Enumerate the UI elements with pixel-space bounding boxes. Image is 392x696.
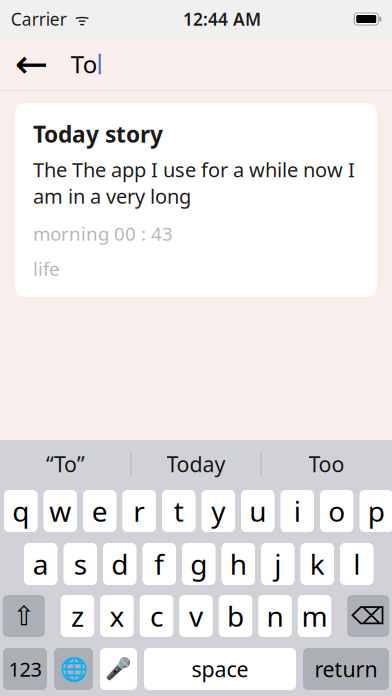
button[interactable]: Too xyxy=(261,440,391,488)
staticText: space xyxy=(191,655,248,683)
button[interactable]: g xyxy=(182,543,215,585)
staticText: b xyxy=(227,597,244,635)
staticText: m xyxy=(301,597,327,635)
staticText: n xyxy=(266,597,283,635)
button[interactable]: e xyxy=(83,490,116,532)
button[interactable]: x xyxy=(100,595,134,637)
button[interactable]: m xyxy=(298,595,331,637)
staticText: w xyxy=(49,492,71,530)
staticText: v xyxy=(189,597,203,635)
button[interactable]: o xyxy=(320,490,353,532)
staticText: morning 00 : 43 xyxy=(33,221,173,246)
staticText: 123 xyxy=(8,656,41,682)
button[interactable]: j xyxy=(261,543,294,585)
staticText: z xyxy=(71,597,84,635)
staticText: Too xyxy=(308,450,344,478)
staticText: a xyxy=(33,545,49,583)
staticText: l xyxy=(353,545,360,583)
button[interactable]: “To” xyxy=(0,440,130,488)
button[interactable]: t xyxy=(162,490,195,532)
staticText: c xyxy=(150,597,163,635)
button[interactable]: d xyxy=(103,543,136,585)
button[interactable]: Delete xyxy=(347,595,389,637)
staticText: f xyxy=(154,545,164,583)
staticText: The The app I use for a while now I am i… xyxy=(33,156,355,209)
staticText: Today story xyxy=(33,119,163,149)
button[interactable]: k xyxy=(300,543,334,585)
staticText: q xyxy=(12,492,29,530)
button[interactable]: Today xyxy=(131,440,260,488)
staticText: return xyxy=(314,655,377,683)
staticText: j xyxy=(274,545,281,583)
button[interactable]: u xyxy=(241,490,274,532)
staticText: ᯤ xyxy=(67,8,90,30)
staticText: p xyxy=(368,492,385,530)
button[interactable]: n xyxy=(258,595,292,637)
staticText: k xyxy=(310,545,325,583)
button[interactable]: h xyxy=(221,543,255,585)
button[interactable]: q xyxy=(4,490,37,532)
button[interactable]: Dictation xyxy=(100,648,137,690)
button[interactable]: Next keyboard xyxy=(54,648,93,690)
button[interactable]: r xyxy=(122,490,156,532)
button[interactable]: f xyxy=(142,543,176,585)
button[interactable]: space xyxy=(144,648,296,690)
button[interactable]: w xyxy=(43,490,77,532)
button[interactable]: 123 xyxy=(3,648,47,690)
staticText: Carrier xyxy=(11,7,67,30)
staticText: 🌐 xyxy=(59,656,87,682)
staticText: r xyxy=(133,492,145,530)
staticText: g xyxy=(190,545,207,583)
button[interactable]: To xyxy=(57,38,221,90)
staticText: ⇧ xyxy=(13,601,35,631)
staticText: x xyxy=(109,597,124,635)
staticText: i xyxy=(294,492,301,530)
staticText: o xyxy=(328,492,345,530)
button[interactable]: return xyxy=(303,648,389,690)
staticText: 12:44 AM xyxy=(183,7,261,30)
staticText: e xyxy=(92,492,108,530)
button[interactable]: b xyxy=(219,595,252,637)
staticText: 🎤 xyxy=(105,657,132,681)
staticText: life xyxy=(33,256,60,281)
button[interactable]: i xyxy=(280,490,314,532)
button[interactable]: y xyxy=(201,490,235,532)
staticText: t xyxy=(174,492,184,530)
button[interactable]: p xyxy=(359,490,392,532)
staticText: s xyxy=(74,545,87,583)
button[interactable]: a xyxy=(24,543,57,585)
staticText: d xyxy=(111,545,128,583)
button[interactable]: c xyxy=(140,595,173,637)
button[interactable]: z xyxy=(61,595,94,637)
button[interactable]: v xyxy=(179,595,213,637)
button[interactable]: l xyxy=(340,543,373,585)
staticText: ⌫ xyxy=(351,602,385,630)
staticText: y xyxy=(211,492,225,530)
staticText: Today xyxy=(166,450,225,478)
button[interactable]: Shift xyxy=(3,595,45,637)
staticText: u xyxy=(249,492,266,530)
button[interactable]: Today story xyxy=(15,103,377,297)
staticText: To xyxy=(71,48,98,80)
staticText: “To” xyxy=(46,450,85,478)
button[interactable]: s xyxy=(63,543,97,585)
button[interactable]: Back xyxy=(7,38,57,90)
staticText: h xyxy=(230,545,247,583)
staticText: ← xyxy=(15,41,49,87)
